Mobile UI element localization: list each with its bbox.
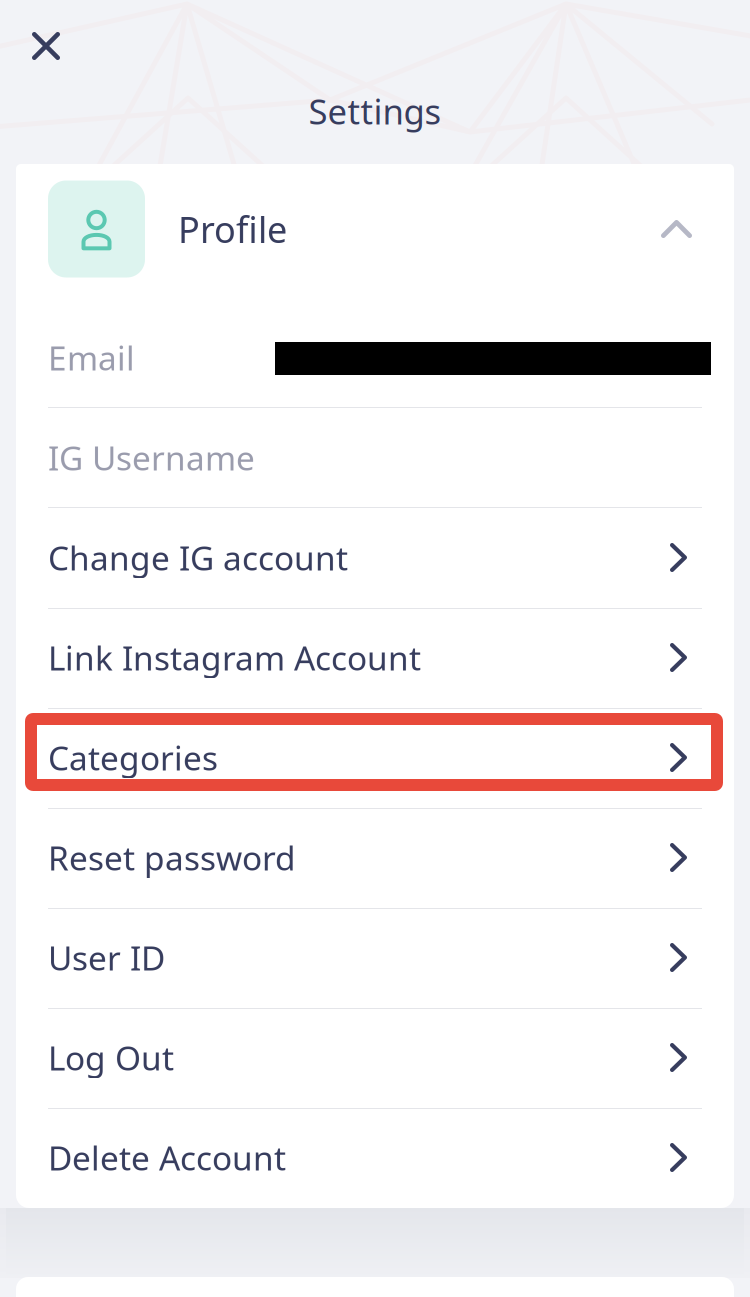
staticText: Email bbox=[48, 335, 135, 380]
button[interactable]: Reset password bbox=[16, 807, 734, 907]
button[interactable]: Link Instagram Account bbox=[16, 607, 734, 707]
staticText: Profile bbox=[178, 205, 287, 253]
staticText: Change IG account bbox=[48, 535, 348, 580]
button[interactable]: Close bbox=[18, 18, 74, 74]
staticText: IG Username bbox=[48, 435, 255, 480]
staticText: Link Instagram Account bbox=[48, 635, 421, 680]
button[interactable]: Categories bbox=[16, 707, 734, 807]
staticText: User ID bbox=[48, 935, 165, 980]
staticText: Reset password bbox=[48, 835, 296, 880]
button[interactable]: Log Out bbox=[16, 1007, 734, 1107]
staticText: Delete Account bbox=[48, 1135, 286, 1180]
staticText: Categories bbox=[48, 735, 218, 780]
staticText: Settings bbox=[308, 88, 441, 134]
staticText: Log Out bbox=[48, 1035, 174, 1080]
button[interactable]: Delete Account bbox=[16, 1107, 734, 1207]
button[interactable]: Change IG account bbox=[16, 507, 734, 607]
button[interactable]: Profile bbox=[16, 164, 734, 307]
button[interactable]: User ID bbox=[16, 907, 734, 1007]
